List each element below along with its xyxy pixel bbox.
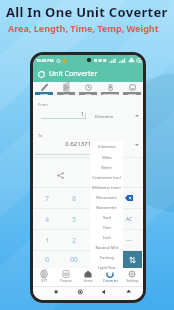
staticText: Finance bbox=[60, 279, 72, 283]
staticText: 1 bbox=[41, 110, 84, 118]
button[interactable]: Nautical Mile bbox=[90, 242, 123, 252]
button[interactable]: 9 bbox=[87, 188, 115, 208]
button[interactable]: Converter bbox=[99, 268, 121, 286]
staticText: — bbox=[126, 236, 133, 244]
staticText: To bbox=[38, 133, 43, 138]
button[interactable]: Home bbox=[77, 268, 99, 286]
button[interactable]: Yard bbox=[90, 212, 123, 222]
staticText: Home bbox=[83, 279, 93, 283]
staticText: Furlong bbox=[100, 255, 114, 260]
staticText: 9 bbox=[99, 194, 103, 203]
staticText: 00 bbox=[70, 255, 78, 264]
staticText: Light Year bbox=[98, 265, 116, 270]
button[interactable]: 1 bbox=[41, 110, 86, 119]
button[interactable]: 6 bbox=[87, 209, 115, 229]
staticText: Area, Length, Time, Temp, Weight bbox=[8, 22, 159, 34]
button[interactable]: Kilometre bbox=[95, 112, 139, 120]
staticText: Temperature bbox=[103, 92, 118, 95]
staticText: Settings bbox=[126, 279, 139, 283]
staticText: 5 bbox=[72, 215, 76, 224]
button[interactable]: Temperature bbox=[99, 82, 121, 95]
staticText: All In One Unit Coverter bbox=[6, 3, 168, 21]
button[interactable]: Kilometre bbox=[95, 141, 139, 149]
staticText: Length bbox=[40, 92, 48, 95]
staticText: Centimetre (cm) bbox=[92, 175, 121, 180]
other: Backspace bbox=[125, 195, 133, 201]
staticText: Weight bbox=[128, 92, 136, 95]
staticText: 0 bbox=[45, 255, 49, 264]
staticText: 7 bbox=[45, 194, 49, 203]
staticText: Yard bbox=[103, 215, 111, 220]
staticText: Metre bbox=[101, 165, 112, 170]
button[interactable]: Inch bbox=[90, 232, 123, 242]
button[interactable]: 5 bbox=[60, 209, 87, 229]
button[interactable]: Backspace bbox=[115, 188, 143, 208]
button[interactable]: Unit Converter bbox=[33, 66, 143, 82]
staticText: Micrometre bbox=[96, 195, 117, 200]
button[interactable]: AC bbox=[115, 209, 143, 229]
staticText: Kilometre bbox=[98, 144, 116, 149]
staticText: Kilometre bbox=[95, 114, 114, 119]
button[interactable]: 4 bbox=[33, 209, 60, 229]
button[interactable]: Nanometre bbox=[90, 202, 123, 212]
staticText: Unit Converter bbox=[49, 69, 98, 79]
staticText: AC bbox=[126, 216, 133, 223]
button[interactable]: Area bbox=[55, 82, 77, 95]
button[interactable]: Time bbox=[77, 82, 99, 95]
button[interactable]: 7 bbox=[33, 188, 60, 208]
button[interactable]: Feet bbox=[90, 222, 123, 232]
button[interactable]: Share bbox=[33, 158, 88, 187]
button[interactable]: 00 bbox=[60, 251, 87, 268]
staticText: Converter bbox=[103, 279, 118, 283]
staticText: . bbox=[100, 255, 102, 264]
staticText: 2 bbox=[72, 236, 76, 245]
button[interactable]: . bbox=[87, 251, 115, 268]
staticText: From bbox=[38, 102, 48, 107]
staticText: GST bbox=[41, 279, 47, 283]
button[interactable]: 1 bbox=[33, 230, 60, 250]
staticText: 4 bbox=[45, 215, 49, 224]
button[interactable]: Settings bbox=[121, 268, 143, 286]
button[interactable]: Finance bbox=[55, 268, 77, 286]
staticText: Millimetre (mm) bbox=[92, 185, 121, 190]
button[interactable]: Swap units bbox=[123, 251, 142, 268]
button[interactable]: 0 bbox=[33, 251, 60, 268]
button[interactable]: 3 bbox=[87, 230, 115, 250]
staticText: 8 bbox=[72, 194, 76, 203]
button[interactable]: — bbox=[115, 230, 143, 250]
button[interactable]: Centimetre (cm) bbox=[90, 172, 123, 182]
button[interactable]: Miles bbox=[90, 152, 123, 162]
staticText: 10:36 PM bbox=[36, 58, 54, 63]
staticText: Feet bbox=[103, 225, 111, 230]
staticText: 1 bbox=[45, 236, 49, 245]
staticText: Miles bbox=[102, 155, 112, 160]
other: Share bbox=[57, 172, 64, 179]
button[interactable]: Light Year bbox=[90, 262, 123, 272]
staticText: Area bbox=[63, 92, 69, 95]
button[interactable]: Metre bbox=[90, 162, 123, 172]
button[interactable]: GST bbox=[33, 268, 55, 286]
button[interactable]: Weight bbox=[121, 82, 143, 95]
staticText: 0.621371 bbox=[35, 140, 91, 148]
button[interactable]: Micrometre bbox=[90, 192, 123, 202]
button[interactable]: Furlong bbox=[90, 252, 123, 262]
button[interactable]: Millimetre (mm) bbox=[90, 182, 123, 192]
button[interactable]: Length bbox=[33, 82, 55, 95]
staticText: Nautical Mile bbox=[95, 245, 119, 250]
staticText: Kilometre bbox=[95, 143, 114, 148]
staticText: Time bbox=[85, 92, 91, 95]
button[interactable]: 2 bbox=[60, 230, 87, 250]
staticText: Nanometre bbox=[96, 205, 117, 210]
button[interactable]: 8 bbox=[60, 188, 87, 208]
button[interactable]: Kilometre bbox=[90, 141, 123, 152]
button[interactable]: Swap units bbox=[115, 251, 143, 268]
staticText: Inch bbox=[103, 235, 111, 240]
